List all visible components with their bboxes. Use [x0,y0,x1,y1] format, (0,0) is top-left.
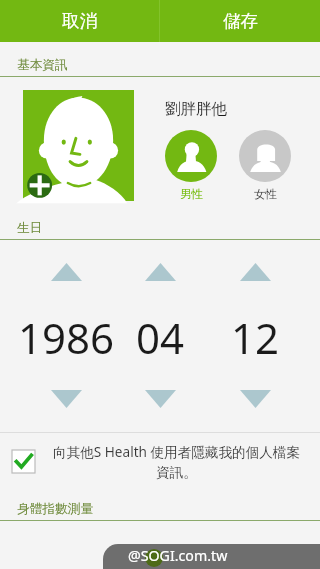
staticText: 1986 [18,309,115,361]
other: Hide profile checkbox [12,450,35,473]
button[interactable]: Increase [231,256,279,288]
staticText: 身體指數測量 [17,501,94,517]
staticText: 取消 [62,10,97,32]
staticText: 向其他S Health 使用者隱藏我的個人檔案資訊。 [47,442,306,481]
button[interactable]: 儲存 [160,0,320,42]
staticText: 12 [231,309,280,361]
button[interactable]: Decrease [231,383,279,415]
button[interactable]: Decrease [42,383,90,415]
button[interactable]: 取消 [0,0,159,42]
staticText: 基本資訊 [17,57,68,73]
staticText: 儲存 [223,10,258,32]
staticText: 男性 [180,187,203,201]
staticText: 04 [136,309,185,361]
button[interactable]: 男性 [165,130,217,201]
button[interactable]: Increase [42,256,90,288]
staticText: 女性 [254,187,277,201]
staticText: 劉胖胖他 [165,99,227,119]
staticText: 生日 [17,220,43,236]
button[interactable]: Increase [136,256,184,288]
button[interactable]: 女性 [239,130,291,201]
button[interactable]: Hide profile checkbox [0,433,320,489]
button[interactable]: 12 [205,309,305,361]
button[interactable]: 04 [110,309,210,361]
button[interactable]: Decrease [136,383,184,415]
button[interactable]: Change profile photo [23,90,134,201]
staticText: @SOGI.com.tw [128,546,228,565]
button[interactable]: 1986 [16,309,116,361]
